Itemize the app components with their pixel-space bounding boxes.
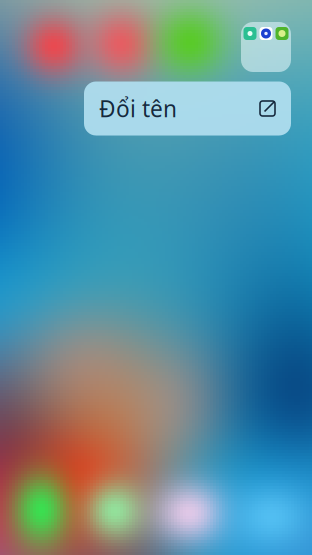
staticText: Đổi tên [99, 93, 177, 123]
button[interactable]: Đổi tên [84, 81, 291, 135]
